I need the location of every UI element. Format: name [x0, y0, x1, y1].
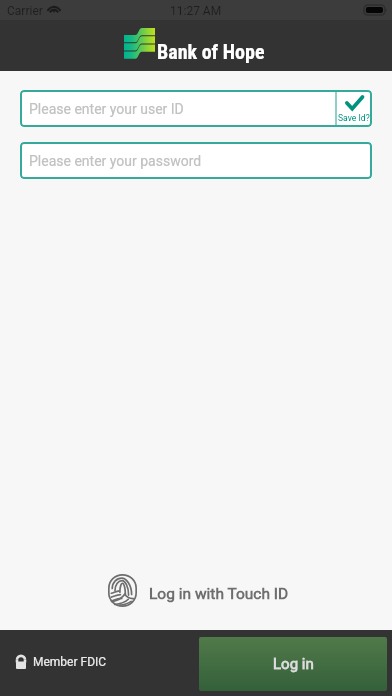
button[interactable]: Log in with Touch ID [108, 574, 289, 607]
staticText: Please enter your password [29, 153, 202, 169]
staticText: 11:27 AM [170, 4, 222, 18]
button[interactable]: Log in [199, 637, 387, 691]
staticText: Bank of Hope [157, 40, 265, 63]
button[interactable]: Member FDIC [16, 655, 107, 669]
staticText: Please enter your user ID [29, 101, 184, 117]
staticText: Carrier [7, 4, 43, 18]
staticText: Save Id? [338, 113, 370, 123]
staticText: Log in with Touch ID [149, 585, 289, 603]
button[interactable]: Save Id [336, 90, 372, 127]
button[interactable]: Please enter your password [20, 142, 372, 179]
staticText: Member FDIC [33, 655, 107, 669]
staticText: Log in [273, 655, 314, 673]
button[interactable]: Please enter your user ID [20, 90, 336, 127]
